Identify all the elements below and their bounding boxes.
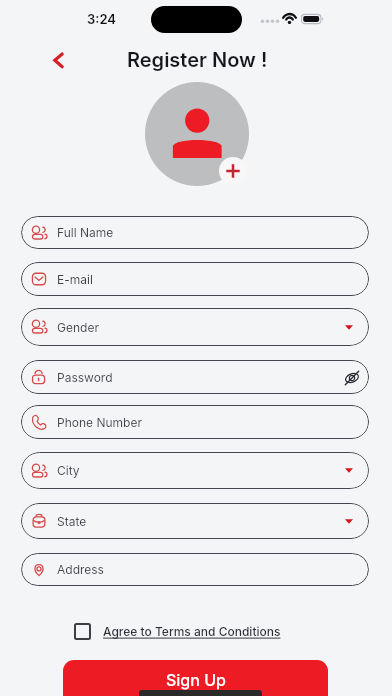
staticText: 3:24 bbox=[87, 11, 116, 27]
button[interactable]: Profile photo bbox=[145, 82, 249, 186]
button[interactable]: Full Name bbox=[21, 216, 369, 249]
button[interactable]: Password bbox=[21, 360, 369, 394]
staticText: Password bbox=[57, 370, 113, 385]
staticText: Register Now ! bbox=[127, 48, 268, 72]
button[interactable]: Agree to Terms and Conditions checkbox bbox=[74, 623, 91, 640]
staticText: State bbox=[57, 514, 87, 529]
button[interactable]: Add photo bbox=[219, 157, 247, 185]
button[interactable]: Phone Number bbox=[21, 405, 369, 439]
staticText: E-mail bbox=[57, 272, 93, 287]
staticText: Full Name bbox=[57, 225, 114, 240]
staticText: Address bbox=[57, 562, 104, 577]
button[interactable]: Agree to Terms and Conditions bbox=[103, 624, 281, 639]
button[interactable]: Gender bbox=[21, 308, 369, 346]
staticText: Sign Up bbox=[166, 670, 226, 689]
button[interactable]: E-mail bbox=[21, 262, 369, 296]
staticText: City bbox=[57, 463, 80, 478]
staticText: Gender bbox=[57, 320, 99, 335]
button[interactable]: Address bbox=[21, 553, 369, 586]
button[interactable]: Sign Up bbox=[63, 660, 328, 696]
button[interactable]: Back bbox=[44, 45, 74, 75]
staticText: Phone Number bbox=[57, 415, 142, 430]
button[interactable]: State bbox=[21, 503, 369, 539]
button[interactable]: City bbox=[21, 452, 369, 489]
